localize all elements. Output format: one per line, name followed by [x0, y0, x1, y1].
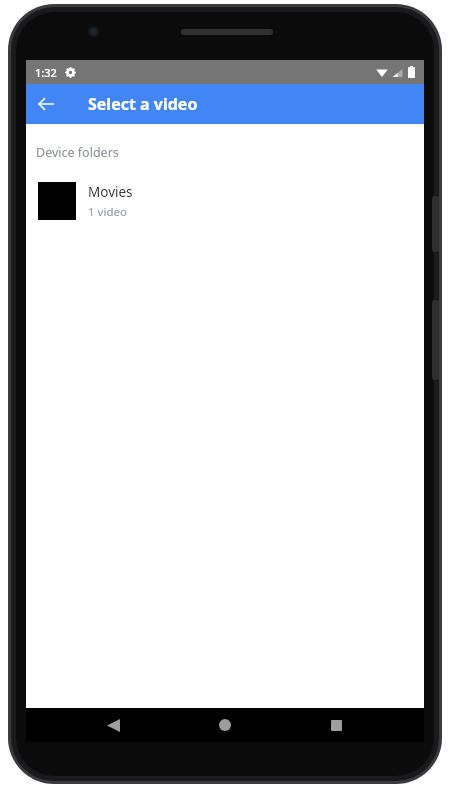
staticText: 1 video — [88, 204, 127, 220]
button[interactable]: Home — [210, 710, 240, 740]
staticText: Select a video — [88, 93, 198, 115]
button[interactable]: Back — [30, 88, 62, 120]
staticText: 1:32 — [35, 65, 57, 80]
staticText: Movies — [88, 183, 133, 201]
button[interactable]: Movies — [26, 176, 424, 226]
button[interactable]: Back — [98, 710, 128, 740]
staticText: Device folders — [36, 144, 119, 161]
button[interactable]: Recent apps — [321, 710, 351, 740]
